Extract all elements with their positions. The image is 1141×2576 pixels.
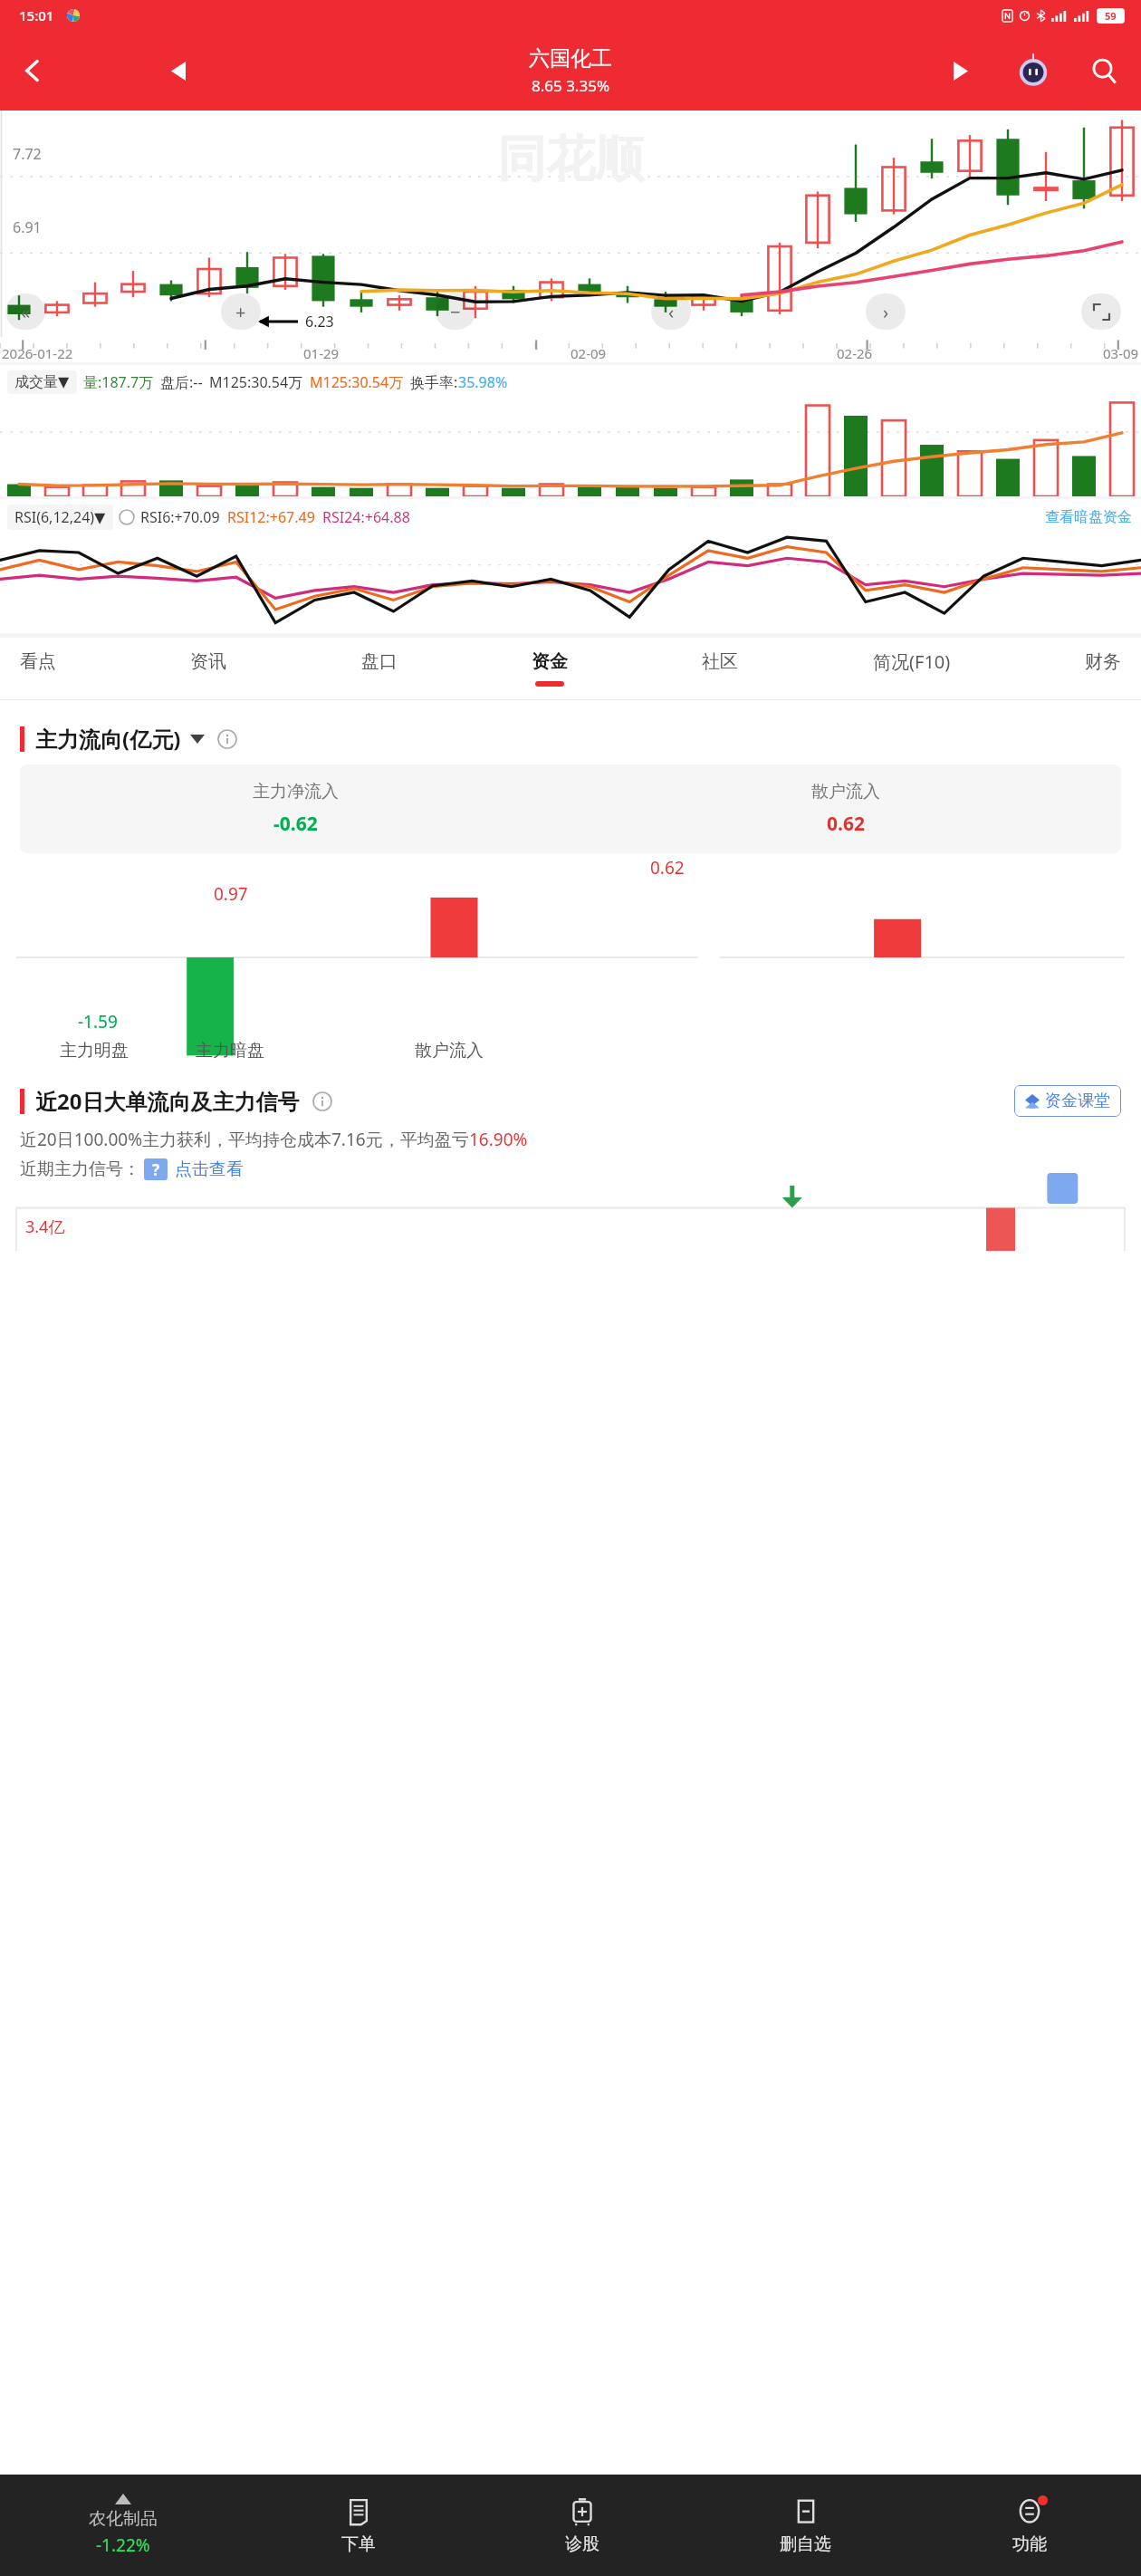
staticText: 03-09	[1103, 344, 1139, 362]
staticText: 量:187.7万	[83, 372, 154, 392]
button[interactable]: 六国化工	[529, 45, 612, 96]
staticText: 资金课堂	[1045, 1091, 1110, 1111]
staticText: 删自选	[780, 2533, 831, 2555]
staticText: 资金	[532, 650, 568, 673]
staticText: 59	[1105, 9, 1117, 23]
button[interactable]: Zoom in	[221, 293, 261, 330]
button[interactable]: 查看暗盘资金	[1045, 508, 1132, 526]
staticText: 02-26	[837, 344, 873, 362]
staticText: 六国化工	[529, 45, 612, 72]
button[interactable]: Scroll to start	[5, 293, 45, 330]
button[interactable]: 删自选	[694, 2475, 917, 2576]
staticText: ›	[883, 300, 889, 324]
button[interactable]: Next stock	[936, 46, 985, 95]
staticText: 成交量▼	[14, 373, 70, 391]
staticText: ?	[152, 1159, 160, 1180]
staticText: 0.62	[650, 856, 685, 879]
staticText: 社区	[702, 650, 738, 673]
staticText: 散户流入	[811, 781, 880, 803]
button[interactable]: Back	[5, 43, 60, 98]
staticText: 盘后:--	[160, 372, 203, 392]
staticText: RSI(6,12,24)▼	[14, 507, 106, 527]
staticText: -1.59	[78, 1010, 118, 1033]
staticText: 6.23	[305, 312, 334, 332]
staticText: RSI12:+67.49	[227, 507, 315, 527]
staticText: 查看暗盘资金	[1045, 508, 1132, 526]
button[interactable]: Fullscreen	[1081, 293, 1121, 330]
button[interactable]: 简况(F10)	[866, 638, 958, 699]
staticText: 6.91	[13, 217, 42, 237]
staticText: 诊股	[565, 2533, 599, 2555]
button[interactable]: 成交量▼	[7, 370, 77, 394]
staticText: 16.90%	[469, 1128, 528, 1151]
button[interactable]: 功能	[917, 2475, 1141, 2576]
staticText: RSI6:+70.09	[140, 507, 220, 527]
staticText: 功能	[1012, 2533, 1047, 2555]
staticText: -1.22%	[96, 2533, 150, 2557]
button[interactable]: Change metric	[190, 735, 205, 744]
staticText: 3.4亿	[25, 1216, 65, 1238]
staticText: 02-09	[570, 344, 607, 362]
staticText: 资讯	[190, 650, 226, 673]
staticText: 0.97	[214, 882, 248, 906]
button[interactable]: 资讯	[183, 638, 234, 699]
staticText: 下单	[341, 2533, 376, 2555]
button[interactable]: 资金	[524, 638, 575, 699]
button[interactable]: 诊股	[470, 2475, 694, 2576]
button[interactable]: Info	[217, 729, 237, 749]
button[interactable]: 财务	[1078, 638, 1128, 699]
other: Info	[119, 509, 135, 525]
staticText: 盘口	[361, 650, 398, 673]
button[interactable]: Info	[312, 1091, 332, 1111]
staticText: M125:30.54万	[209, 372, 303, 392]
button[interactable]: AI assistant	[1009, 46, 1058, 95]
staticText: «	[21, 300, 31, 324]
staticText: 散户流入	[415, 1040, 484, 1062]
staticText: 农化制品	[89, 2508, 158, 2530]
staticText: 近期主力信号：	[20, 1158, 140, 1180]
staticText: 简况(F10)	[873, 649, 951, 674]
button[interactable]: 点击查看	[175, 1158, 244, 1180]
button[interactable]: Search	[1079, 46, 1128, 95]
button[interactable]: 农化制品	[0, 2475, 246, 2576]
button[interactable]: Zoom out	[436, 293, 475, 330]
button[interactable]: Scroll right	[866, 293, 906, 330]
staticText: 近20日100.00%主力获利，平均持仓成本7.16元，平均盈亏	[20, 1128, 469, 1151]
button[interactable]: 盘口	[354, 638, 405, 699]
staticText: 看点	[20, 650, 56, 673]
staticText: +	[235, 300, 246, 324]
staticText: 0.62	[827, 811, 865, 837]
staticText: 主力明盘	[60, 1040, 129, 1062]
staticText: 2026-01-22	[2, 344, 73, 362]
button[interactable]: 看点	[13, 638, 63, 699]
staticText: 15:01	[19, 6, 54, 24]
staticText: RSI24:+64.88	[322, 507, 410, 527]
staticText: 近20日大单流向及主力信号	[35, 1086, 300, 1116]
staticText: 主力净流入	[253, 781, 339, 803]
staticText: -0.62	[273, 811, 318, 837]
staticText: 换手率:	[410, 372, 458, 392]
button[interactable]: 下单	[246, 2475, 470, 2576]
staticText: ‹	[668, 300, 675, 324]
staticText: 财务	[1085, 650, 1121, 673]
staticText: 7.72	[13, 144, 42, 164]
button[interactable]: Scroll left	[651, 293, 691, 330]
staticText: 8.65 3.35%	[532, 75, 610, 96]
staticText: 主力流向(亿元)	[35, 724, 181, 754]
button[interactable]: 资金课堂	[1014, 1085, 1121, 1117]
staticText: 主力暗盘	[196, 1040, 264, 1062]
button[interactable]: 社区	[695, 638, 745, 699]
button[interactable]: RSI(6,12,24)▼	[7, 505, 113, 530]
staticText: 35.98%	[458, 372, 508, 392]
staticText: 点击查看	[175, 1158, 244, 1180]
button[interactable]: Previous stock	[154, 46, 203, 95]
staticText: M125:30.54万	[310, 372, 404, 392]
staticText: 01-29	[303, 344, 340, 362]
staticText: −	[450, 300, 461, 324]
staticText: 同花顺	[497, 129, 644, 190]
